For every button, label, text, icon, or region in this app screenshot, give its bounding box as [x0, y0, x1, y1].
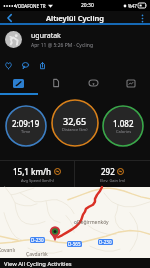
staticText: Değirmenköy: [77, 219, 109, 226]
staticText: 20:30: [81, 2, 94, 9]
button[interactable]: Share: [37, 60, 48, 71]
staticText: 292: [101, 166, 115, 177]
staticText: 15,1 km/h: [13, 166, 52, 177]
staticText: Avg Speed (km/h): [21, 178, 54, 183]
button[interactable]: 292: [75, 161, 150, 187]
staticText: Elev. Gain (m): [100, 178, 126, 183]
button[interactable]: Analysis: [112, 71, 150, 93]
button[interactable]: View All Cycling Activities: [0, 258, 150, 268]
button[interactable]: uguratak: [0, 25, 150, 54]
button[interactable]: 15,1 km/h: [0, 161, 74, 187]
button[interactable]: Laps: [74, 71, 112, 93]
staticText: D-230: [31, 237, 44, 243]
button[interactable]: Activity map: [0, 187, 150, 258]
button[interactable]: More options: [134, 11, 150, 25]
button[interactable]: Overview: [0, 71, 37, 93]
staticText: Kovanlı: [0, 247, 16, 254]
staticText: Time: [21, 129, 31, 134]
staticText: Çavdarlık: [26, 251, 48, 258]
staticText: View All Cycling Activities: [4, 260, 72, 268]
button[interactable]: Give kudos: [3, 60, 14, 71]
staticText: 1.082: [113, 118, 134, 129]
staticText: %47: [128, 3, 137, 9]
staticText: D-230: [99, 239, 112, 245]
staticText: Distance (km): [62, 127, 88, 132]
staticText: VODAFONE TR: [15, 3, 46, 9]
staticText: uguratak: [31, 31, 61, 41]
button[interactable]: Comment: [20, 60, 31, 71]
staticText: 32,65: [63, 115, 87, 127]
button[interactable]: Back: [0, 11, 18, 25]
staticText: Apr 11 @ 5:26 PM · Cycling: [31, 42, 94, 49]
staticText: Altıeylül Cycling: [46, 13, 105, 23]
staticText: D-565: [68, 241, 81, 247]
staticText: 2:09:19: [12, 118, 40, 129]
button[interactable]: Segments: [37, 71, 74, 93]
staticText: Calories: [116, 129, 132, 134]
